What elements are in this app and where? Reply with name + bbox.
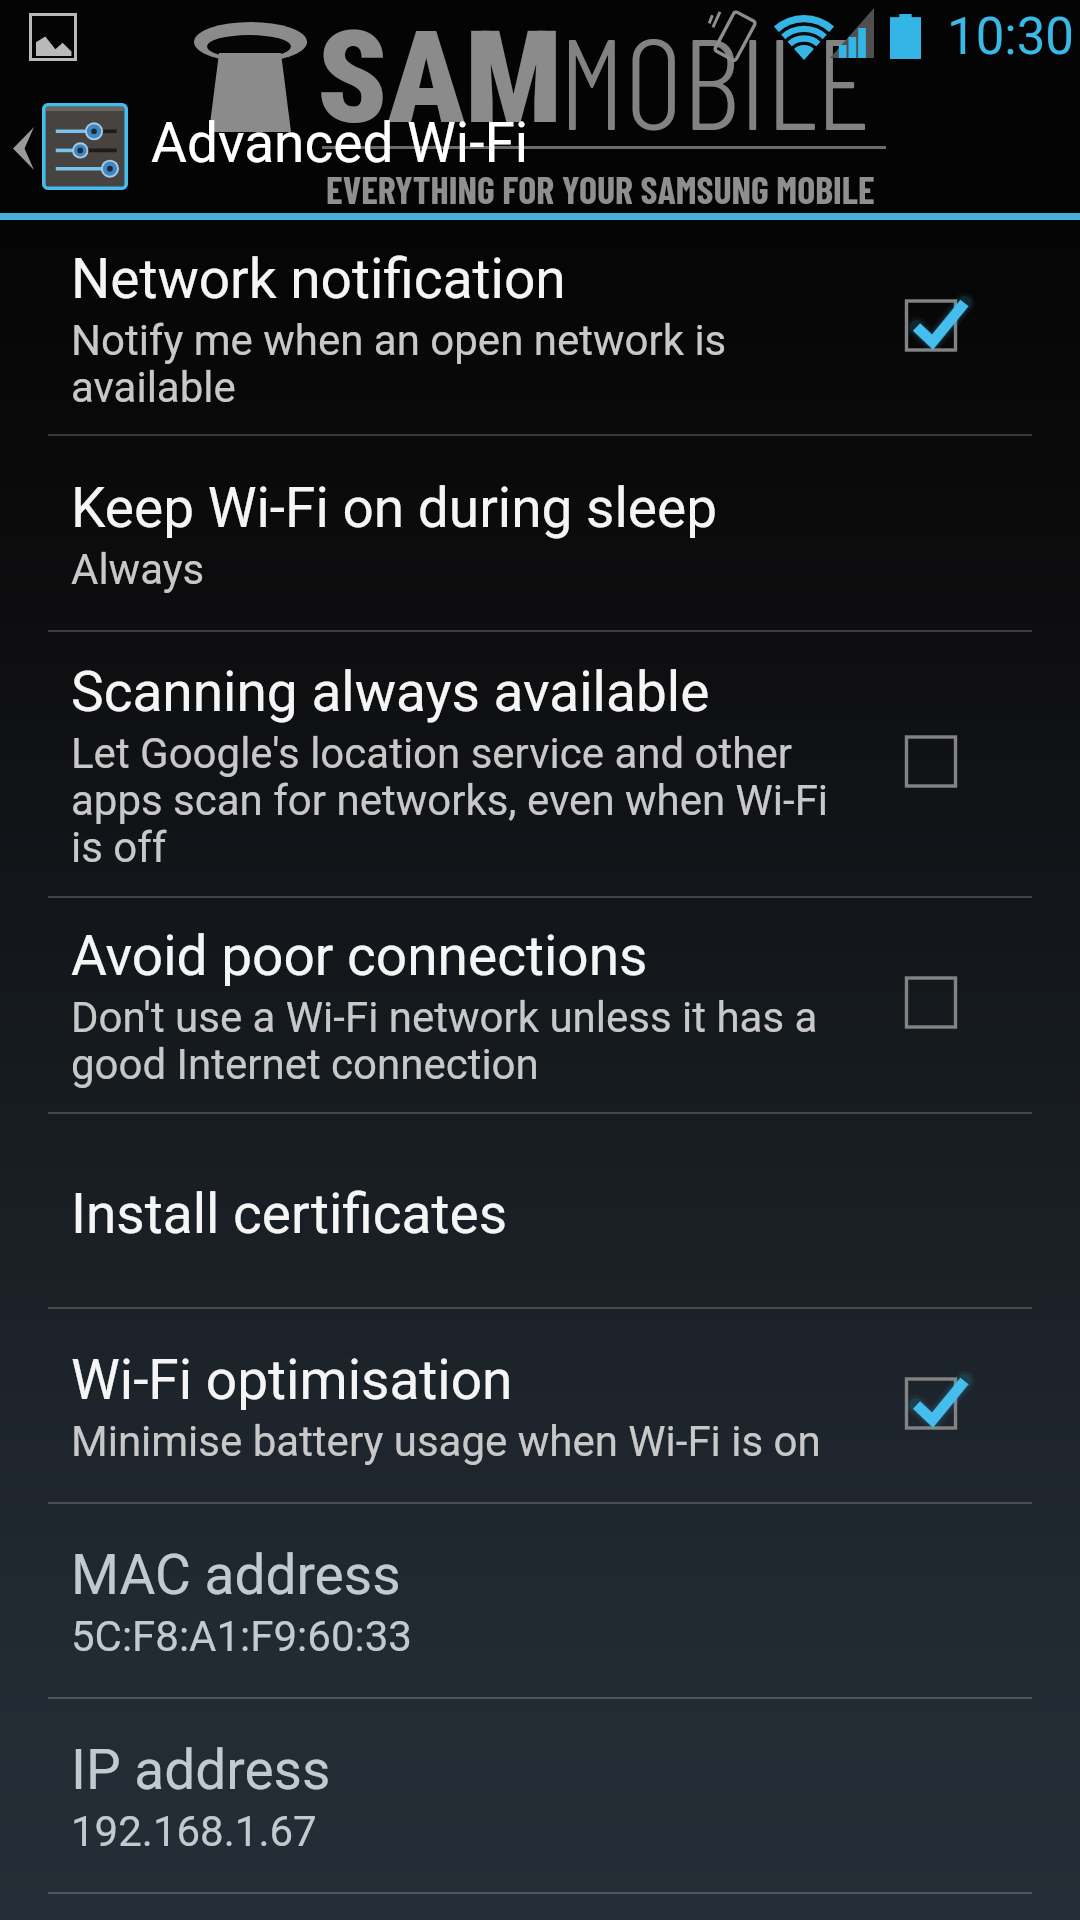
staticText: IP address xyxy=(71,1738,331,1802)
button[interactable]: Keep Wi-Fi on during sleep xyxy=(0,436,1080,630)
button[interactable]: Scanning always available xyxy=(0,632,1080,896)
button[interactable]: Wi-Fi optimisation xyxy=(0,1309,1080,1502)
staticText: Minimise battery usage when Wi-Fi is on xyxy=(71,1419,821,1466)
staticText: MOBILE xyxy=(559,2,871,156)
staticText: Avoid poor connections xyxy=(71,924,648,988)
staticText: Don't use a Wi-Fi network unless it has … xyxy=(71,995,848,1089)
button[interactable]: Unchecked xyxy=(904,716,1000,812)
staticText: 5C:F8:A1:F9:60:33 xyxy=(71,1614,412,1661)
staticText: 10:30 xyxy=(947,7,1075,67)
staticText: Always xyxy=(71,547,205,594)
button[interactable]: Install certificates xyxy=(0,1114,1080,1307)
other: Screenshot captured xyxy=(29,13,77,61)
button[interactable]: Avoid poor connections xyxy=(0,898,1080,1112)
button[interactable]: Checked xyxy=(904,280,1000,376)
button[interactable]: MAC address xyxy=(0,1504,1080,1697)
staticText: Network notification xyxy=(71,247,566,311)
staticText: Notify me when an open network is availa… xyxy=(71,318,848,412)
staticText: Advanced Wi-Fi xyxy=(151,111,529,175)
button[interactable]: IP address xyxy=(0,1699,1080,1892)
staticText: Wi-Fi optimisation xyxy=(71,1348,513,1412)
staticText: Scanning always available xyxy=(71,660,710,724)
staticText: SAM xyxy=(317,3,563,153)
staticText: MAC address xyxy=(71,1543,401,1607)
button[interactable]: Checked xyxy=(904,1358,1000,1454)
button[interactable]: Unchecked xyxy=(904,957,1000,1053)
button[interactable]: Navigate up, Advanced Wi-Fi xyxy=(0,76,1080,213)
staticText: 192.168.1.67 xyxy=(71,1809,317,1856)
other: Navigate up, Advanced Wi-Fi xyxy=(13,127,34,170)
staticText: Install certificates xyxy=(71,1182,508,1246)
button[interactable]: Network notification xyxy=(0,222,1080,434)
staticText: Keep Wi-Fi on during sleep xyxy=(71,476,718,540)
staticText: EVERYTHING FOR YOUR SAMSUNG MOBILE xyxy=(326,166,875,212)
staticText: Let Google's location service and other … xyxy=(71,731,848,872)
